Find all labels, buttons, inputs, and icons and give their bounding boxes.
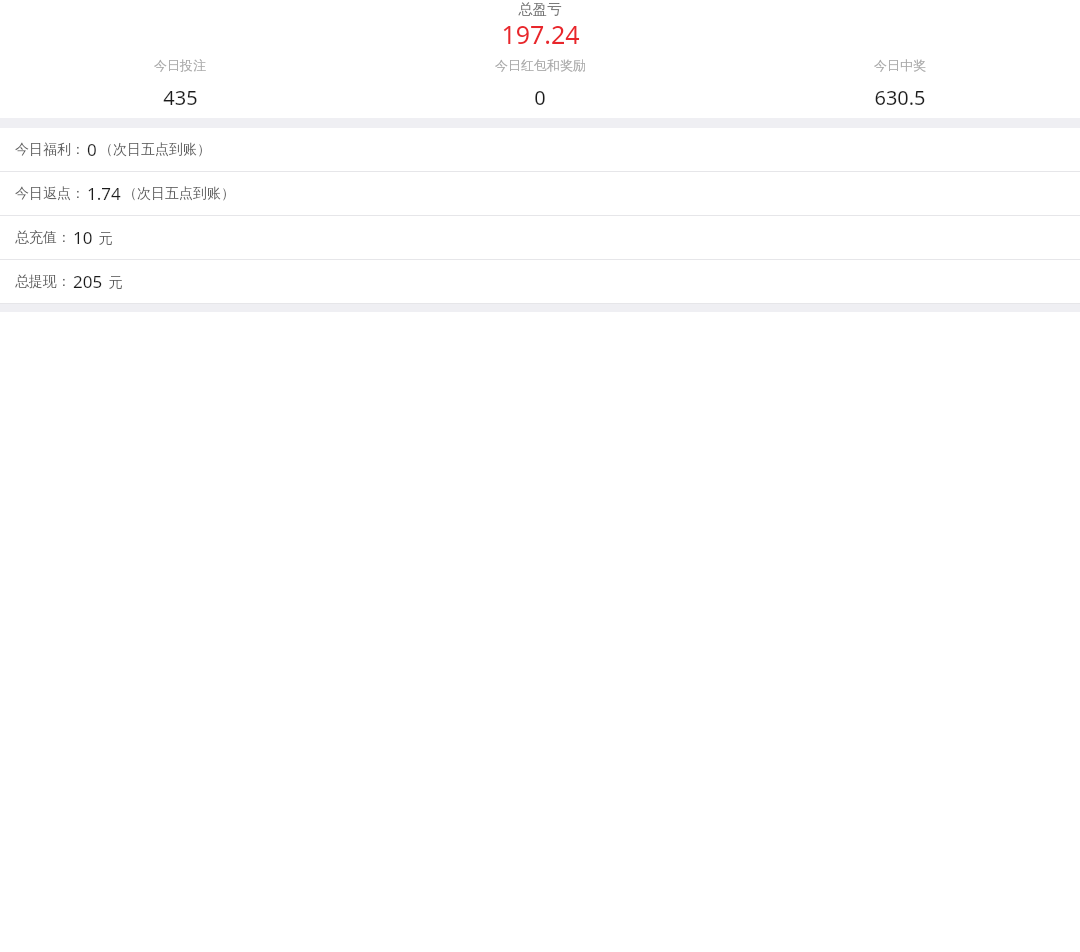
- staticText: 1.74: [87, 182, 121, 205]
- button[interactable]: 总充值：: [0, 216, 1080, 259]
- button[interactable]: 总提现：: [0, 260, 1080, 303]
- button[interactable]: 今日福利：: [0, 128, 1080, 171]
- staticText: 205: [73, 270, 103, 293]
- staticText: 197.24: [501, 17, 580, 51]
- staticText: 10: [73, 226, 93, 249]
- staticText: 总提现：: [15, 273, 71, 291]
- staticText: （次日五点到账）: [99, 141, 211, 159]
- staticText: （次日五点到账）: [123, 185, 235, 203]
- button[interactable]: 今日中奖: [720, 52, 1080, 118]
- staticText: 今日红包和奖励: [495, 57, 586, 73]
- button[interactable]: 今日返点：: [0, 172, 1080, 215]
- staticText: 元: [95, 228, 113, 247]
- staticText: 今日中奖: [874, 57, 926, 73]
- staticText: 0: [87, 138, 97, 161]
- staticText: 今日返点：: [15, 185, 85, 203]
- button[interactable]: 今日红包和奖励: [360, 52, 720, 118]
- staticText: 0: [534, 84, 546, 111]
- staticText: 元: [105, 272, 123, 291]
- staticText: 435: [163, 84, 198, 111]
- staticText: 今日福利：: [15, 141, 85, 159]
- staticText: 630.5: [874, 84, 926, 111]
- staticText: 总充值：: [15, 229, 71, 247]
- staticText: 总盈亏: [518, 0, 562, 16]
- staticText: 今日投注: [154, 57, 206, 73]
- button[interactable]: 今日投注: [0, 52, 360, 118]
